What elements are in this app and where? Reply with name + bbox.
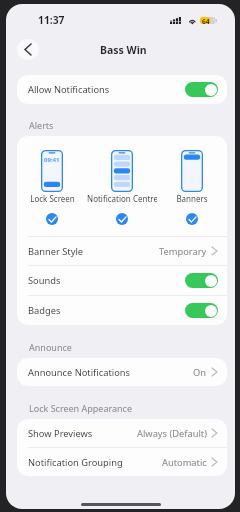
staticText: Always (Default) [137, 427, 207, 440]
staticText: Banners [176, 193, 208, 204]
staticText: Automatic [162, 456, 207, 469]
staticText: Announce [29, 341, 72, 353]
staticText: Lock Screen Appearance [29, 402, 132, 414]
button[interactable]: Banner Style [17, 237, 227, 265]
button[interactable]: Banners [157, 150, 227, 225]
staticText: Allow Notifications [28, 83, 110, 96]
staticText: Bass Win [100, 43, 147, 57]
staticText: On [193, 366, 207, 379]
staticText: Banner Style [28, 245, 84, 258]
staticText: 11:37 [38, 13, 65, 27]
button[interactable]: Notification Grouping [17, 448, 227, 476]
staticText: Badges [28, 304, 61, 317]
button[interactable]: Show Previews [17, 419, 227, 447]
staticText: Lock Screen [30, 193, 75, 204]
staticText: Show Previews [28, 427, 93, 440]
staticText: Announce Notifications [28, 366, 130, 379]
button[interactable]: Toggle [185, 273, 218, 288]
staticText: 64 [202, 17, 210, 24]
button[interactable]: Badges [17, 296, 227, 325]
staticText: Notification Grouping [28, 456, 123, 469]
staticText: Temporary [159, 245, 207, 258]
button[interactable]: Sounds [17, 266, 227, 295]
button[interactable]: Announce Notifications [17, 358, 227, 386]
button[interactable]: Toggle [185, 82, 218, 97]
button[interactable]: Back [17, 39, 39, 60]
button[interactable]: Notification Centre [87, 150, 157, 225]
button[interactable]: 09:41 [17, 150, 87, 225]
staticText: Alerts [29, 119, 54, 131]
staticText: Sounds [28, 274, 61, 287]
button[interactable]: Allow Notifications [17, 75, 227, 104]
staticText: Notification Centre [87, 193, 157, 204]
staticText: 09:41 [44, 156, 60, 164]
button[interactable]: Toggle [185, 303, 218, 318]
